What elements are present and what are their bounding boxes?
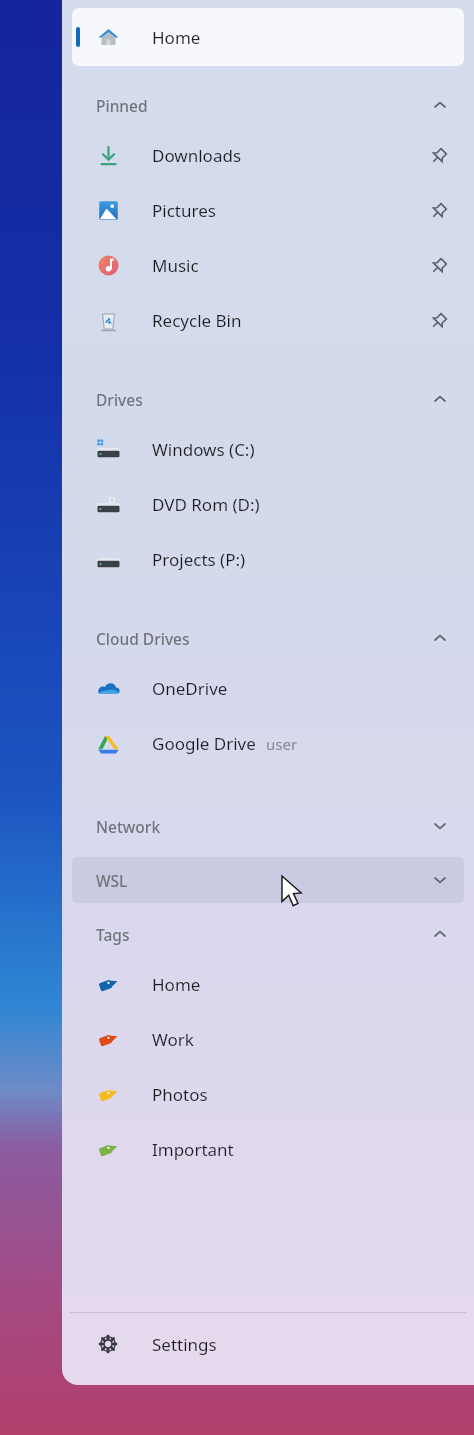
button[interactable]: Unpin Music bbox=[428, 255, 450, 277]
staticText: user bbox=[266, 734, 298, 754]
staticText: Pinned bbox=[96, 95, 148, 116]
staticText: Music bbox=[152, 254, 199, 277]
button[interactable]: DVD Rom (D:) bbox=[72, 477, 464, 532]
staticText: Home bbox=[152, 26, 201, 49]
button[interactable]: Home bbox=[72, 957, 464, 1012]
button[interactable]: Google Drive bbox=[72, 716, 464, 771]
staticText: Tags bbox=[96, 924, 130, 945]
button[interactable]: Music bbox=[72, 238, 464, 293]
button[interactable]: Work bbox=[72, 1012, 464, 1067]
staticText: Drives bbox=[96, 389, 143, 410]
staticText: Google Drive bbox=[152, 732, 256, 755]
button[interactable]: Downloads bbox=[72, 128, 464, 183]
button[interactable]: Tags bbox=[72, 911, 464, 957]
button[interactable]: Cloud Drives bbox=[72, 615, 464, 661]
staticText: Projects (P:) bbox=[152, 548, 246, 571]
button[interactable]: Network bbox=[72, 803, 464, 849]
staticText: Network bbox=[96, 816, 161, 837]
button[interactable]: WSL bbox=[72, 857, 464, 903]
staticText: Home bbox=[152, 973, 201, 996]
button[interactable]: OneDrive bbox=[72, 661, 464, 716]
button[interactable]: Pinned bbox=[72, 82, 464, 128]
button[interactable]: Pictures bbox=[72, 183, 464, 238]
staticText: Cloud Drives bbox=[96, 628, 190, 649]
button[interactable]: Important bbox=[72, 1122, 464, 1177]
staticText: Work bbox=[152, 1028, 194, 1051]
staticText: Settings bbox=[152, 1333, 217, 1356]
button[interactable]: Drives bbox=[72, 376, 464, 422]
button[interactable]: Unpin Recycle Bin bbox=[428, 310, 450, 332]
staticText: Pictures bbox=[152, 199, 216, 222]
staticText: OneDrive bbox=[152, 677, 228, 700]
staticText: Downloads bbox=[152, 144, 242, 167]
staticText: Recycle Bin bbox=[152, 309, 242, 332]
staticText: Windows (C:) bbox=[152, 438, 255, 461]
button[interactable]: Projects (P:) bbox=[72, 532, 464, 587]
button[interactable]: Photos bbox=[72, 1067, 464, 1122]
button[interactable]: Settings bbox=[62, 1313, 474, 1375]
button[interactable]: Unpin Downloads bbox=[428, 145, 450, 167]
staticText: Photos bbox=[152, 1083, 208, 1106]
staticText: DVD Rom (D:) bbox=[152, 493, 260, 516]
button[interactable]: Recycle Bin bbox=[72, 293, 464, 348]
button[interactable]: Home bbox=[72, 8, 464, 66]
staticText: Important bbox=[152, 1138, 234, 1161]
button[interactable]: Unpin Pictures bbox=[428, 200, 450, 222]
staticText: WSL bbox=[96, 870, 128, 891]
button[interactable]: Windows (C:) bbox=[72, 422, 464, 477]
